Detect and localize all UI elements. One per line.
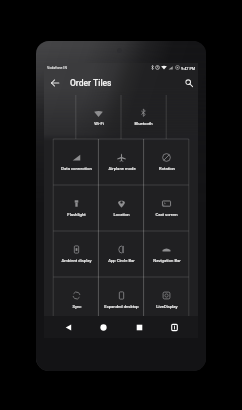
staticText: Order Tiles — [70, 78, 112, 88]
staticText: Sync — [72, 304, 82, 309]
button[interactable]: Search — [182, 76, 196, 90]
staticText: Rotation — [159, 166, 175, 171]
button[interactable]: Flashlight — [54, 185, 99, 231]
staticText: Airplane mode — [108, 166, 136, 171]
button[interactable]: Home — [94, 318, 112, 336]
button[interactable]: Airplane mode — [99, 139, 144, 185]
button[interactable]: Cast screen — [144, 185, 189, 231]
button[interactable]: Back — [48, 76, 62, 90]
staticText: Cast screen — [155, 212, 178, 217]
button[interactable]: Recents — [130, 318, 148, 336]
button[interactable]: Sync — [54, 277, 99, 323]
staticText: Expanded desktop — [104, 304, 139, 309]
staticText: Data connection — [61, 166, 92, 171]
button[interactable]: Back — [59, 318, 77, 336]
button[interactable]: Wi-Fi — [76, 94, 121, 139]
button[interactable]: Bluetooth — [121, 94, 166, 139]
button[interactable]: Ambient display — [54, 231, 99, 277]
staticText: 9:47 PM — [181, 66, 196, 70]
staticText: Wi-Fi — [94, 121, 104, 126]
button[interactable]: App Circle Bar — [99, 231, 144, 277]
button[interactable]: Split screen — [165, 318, 183, 336]
staticText: App Circle Bar — [108, 258, 135, 263]
staticText: Vodafone IN — [47, 66, 67, 70]
staticText: Navigation Bar — [153, 258, 181, 263]
staticText: Flashlight — [67, 212, 86, 217]
button[interactable]: Data connection — [54, 139, 99, 185]
button[interactable]: Location — [99, 185, 144, 231]
staticText: Bluetooth — [134, 121, 153, 126]
staticText: LiveDisplay — [156, 304, 178, 309]
button[interactable]: Expanded desktop — [99, 277, 144, 323]
button[interactable]: LiveDisplay — [144, 277, 189, 323]
staticText: Location — [113, 212, 130, 217]
staticText: Ambient display — [61, 258, 92, 263]
button[interactable]: Rotation — [144, 139, 189, 185]
button[interactable]: Navigation Bar — [144, 231, 189, 277]
